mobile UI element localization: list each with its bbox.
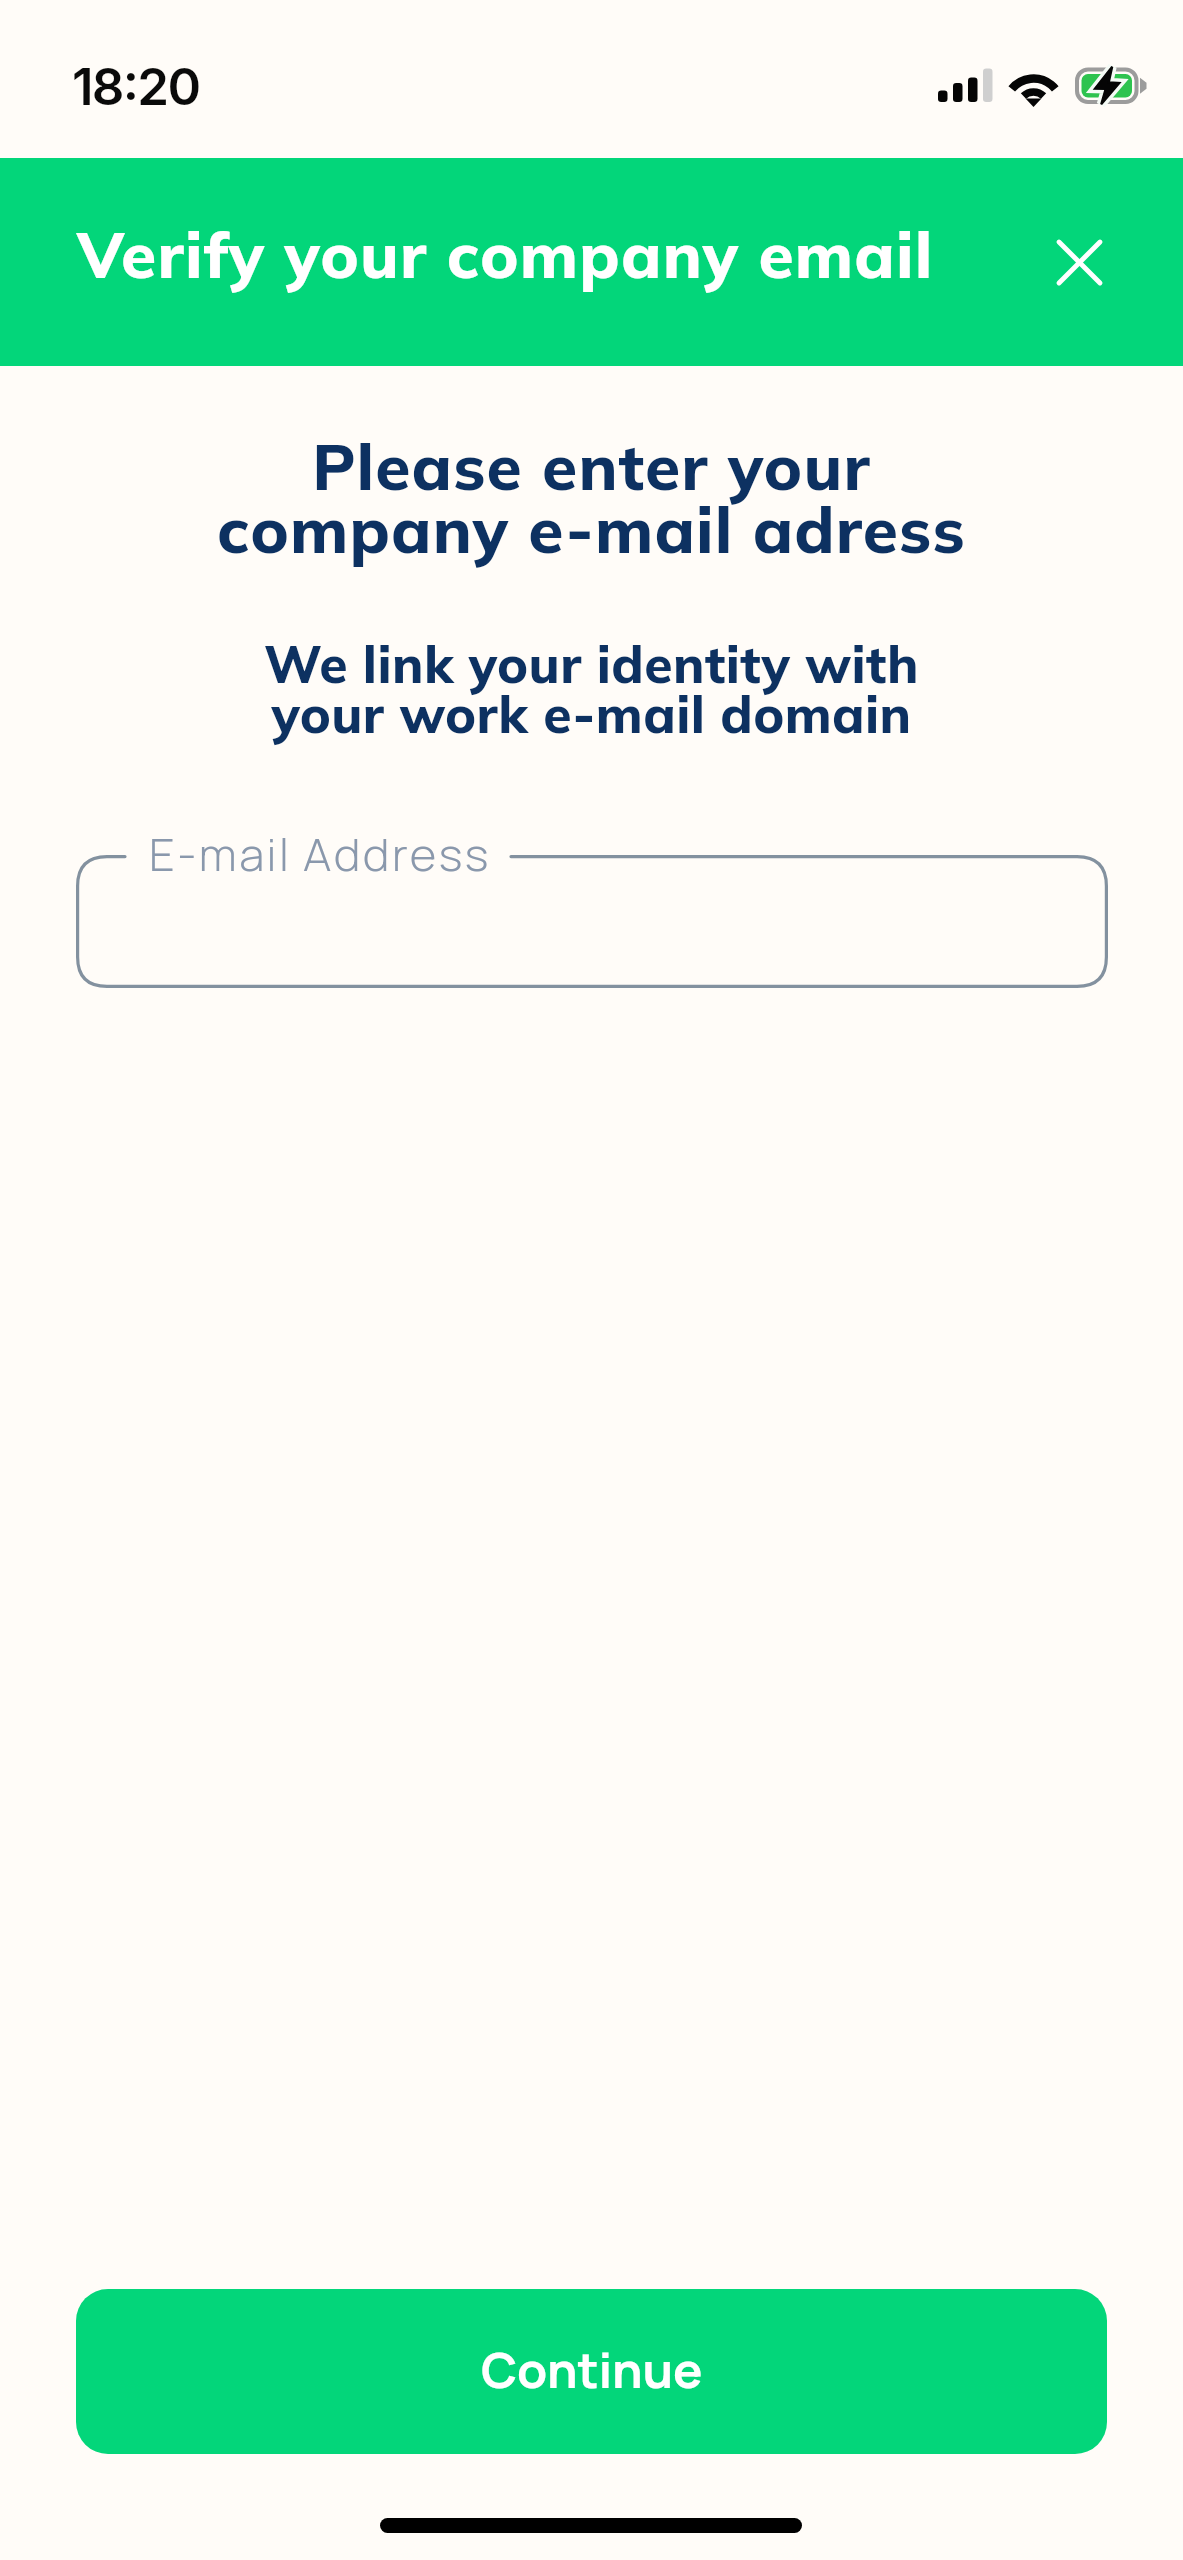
button[interactable]: E-mail Address [76, 855, 1108, 988]
button[interactable]: Continue [76, 2289, 1107, 2454]
staticText: Verify your company email [77, 214, 934, 294]
staticText: We link your identity with your work e-m… [0, 631, 1183, 746]
button[interactable]: Close [1034, 217, 1124, 307]
staticText: Please enter your company e-mail adress [0, 426, 1183, 569]
staticText: E-mail Address [149, 822, 491, 884]
staticText: Continue [481, 2336, 703, 2403]
staticText: 18:20 [72, 56, 200, 118]
